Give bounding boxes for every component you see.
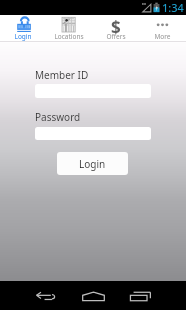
staticText: 1:34 [162,0,184,15]
button[interactable]: Login [0,15,46,41]
staticText: Member ID [35,68,89,82]
staticText: Login [14,32,32,41]
button[interactable]: Recent apps [120,281,161,310]
staticText: $ [111,16,121,34]
staticText: Password [35,110,81,124]
button[interactable]: Back [25,281,66,310]
staticText: Login [79,157,106,171]
staticText: More [154,32,171,41]
button[interactable]: Locations [46,15,92,41]
button[interactable]: More [139,15,186,41]
button[interactable]: Login [57,152,128,175]
button[interactable]: $ [92,15,139,41]
button[interactable]: Home [73,281,114,310]
staticText: Locations [54,32,84,41]
staticText: Offers [106,32,126,41]
